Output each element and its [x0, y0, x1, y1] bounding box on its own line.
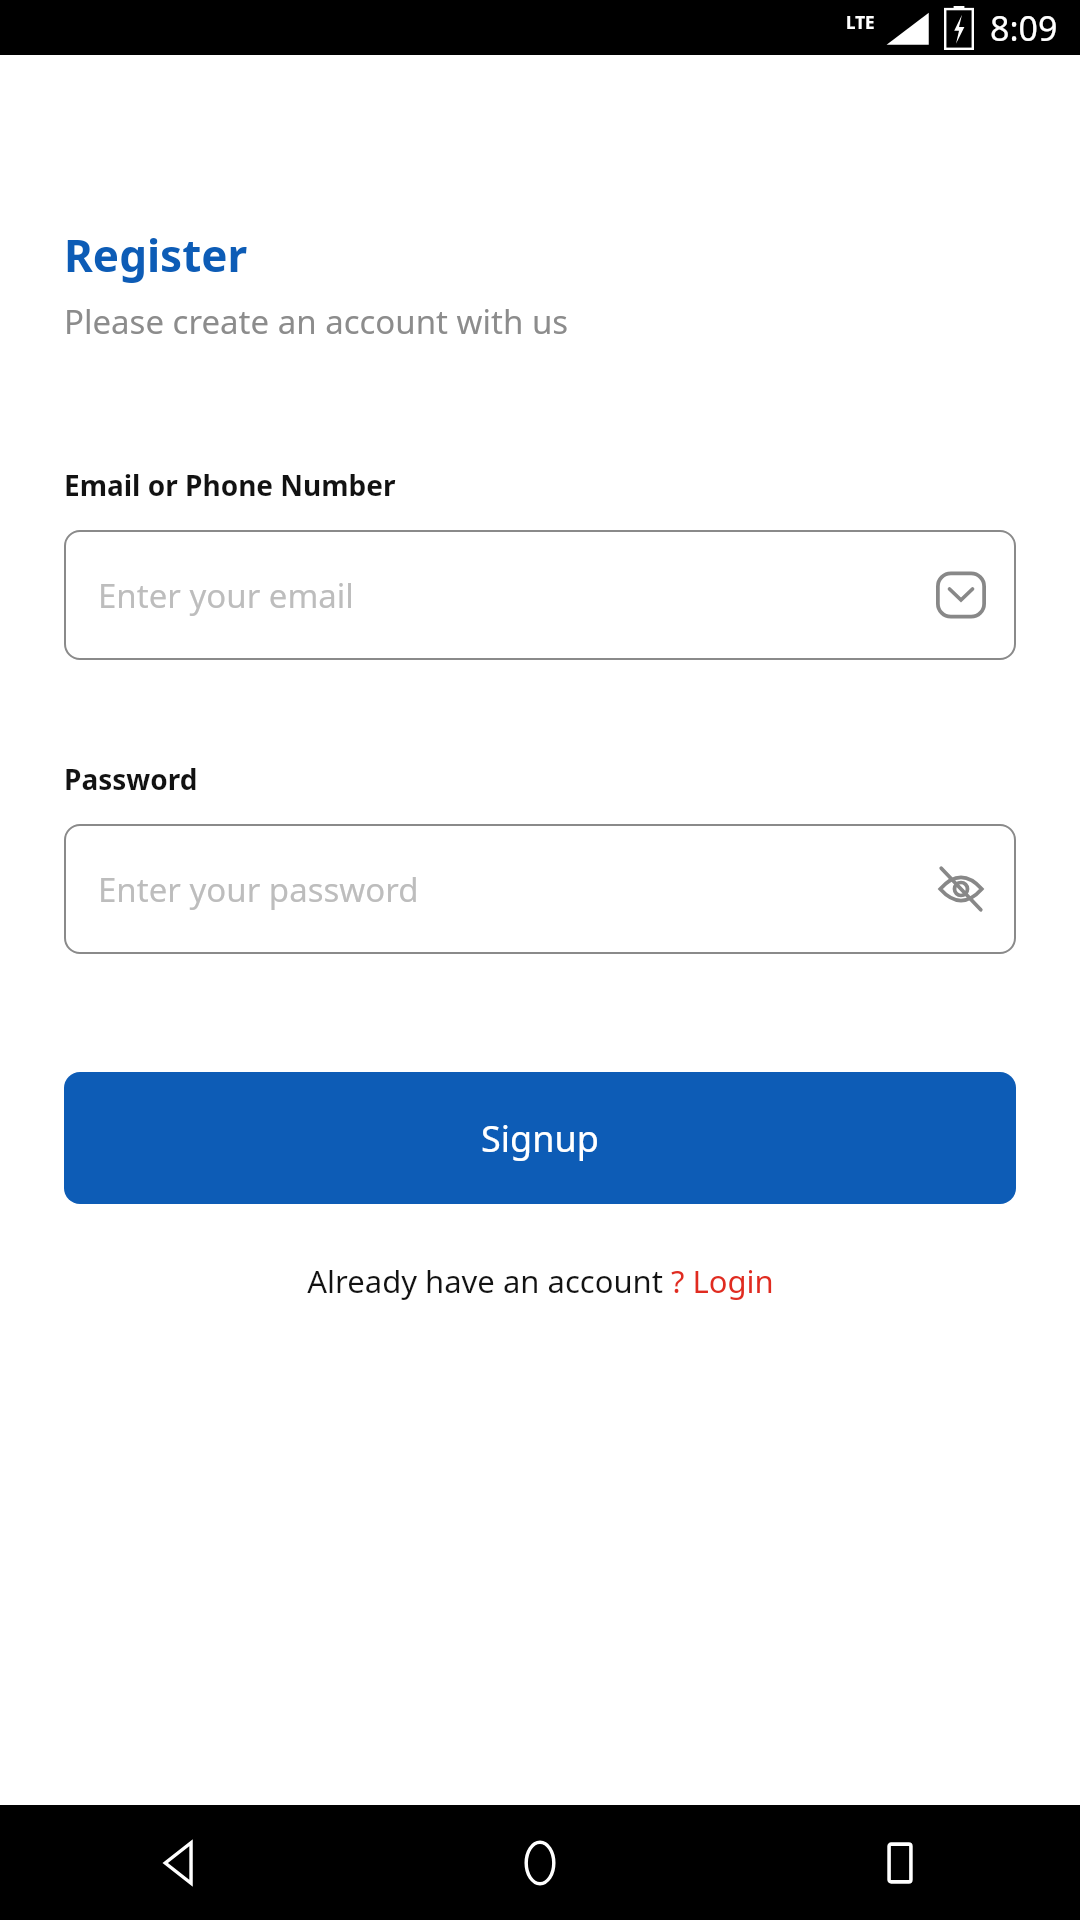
staticText: Already have an account ? Login	[307, 1260, 774, 1302]
staticText: 8:09	[990, 5, 1058, 51]
button[interactable]: Back	[0, 1805, 360, 1920]
staticText: Password	[64, 760, 198, 798]
staticText: LTE	[846, 11, 875, 34]
button[interactable]: Toggle password visibility	[934, 862, 988, 916]
staticText: Email or Phone Number	[64, 466, 396, 504]
button[interactable]: Signup	[64, 1072, 1016, 1204]
staticText: Register	[64, 225, 248, 285]
button[interactable]: Enter your email	[64, 530, 1016, 660]
button[interactable]: Email	[934, 568, 988, 622]
staticText: Enter your password	[98, 867, 419, 912]
staticText: Signup	[481, 1114, 599, 1163]
button[interactable]: Home	[360, 1805, 720, 1920]
button[interactable]: Enter your password	[64, 824, 1016, 954]
staticText: Enter your email	[98, 573, 354, 618]
button[interactable]: Recent apps	[720, 1805, 1080, 1920]
staticText: Please create an account with us	[64, 299, 569, 344]
button[interactable]: Already have an account ? Login	[0, 1260, 1080, 1302]
